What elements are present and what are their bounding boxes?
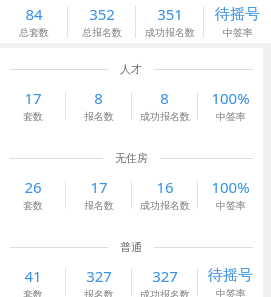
staticText: 普通 xyxy=(120,240,142,254)
staticText: 报名数 xyxy=(84,110,114,123)
staticText: 待摇号 xyxy=(208,266,253,285)
staticText: 中签率 xyxy=(216,199,246,212)
staticText: 中签率 xyxy=(216,287,246,297)
staticText: 26 xyxy=(24,177,42,197)
button[interactable]: 8 xyxy=(66,88,131,123)
button[interactable]: 100% xyxy=(198,88,263,123)
button[interactable]: 100% xyxy=(198,177,263,212)
button[interactable]: 待摇号 xyxy=(198,266,263,297)
button[interactable]: 8 xyxy=(132,88,197,123)
staticText: 成功报名数 xyxy=(145,26,195,39)
staticText: 成功报名数 xyxy=(140,199,190,212)
staticText: 100% xyxy=(211,177,250,197)
staticText: 成功报名数 xyxy=(140,110,190,123)
staticText: 84 xyxy=(25,4,43,24)
button[interactable]: 84 xyxy=(0,4,67,39)
staticText: 套数 xyxy=(23,110,43,123)
staticText: 8 xyxy=(160,88,169,108)
staticText: 无住房 xyxy=(115,151,148,165)
staticText: 100% xyxy=(211,88,250,108)
staticText: 352 xyxy=(89,4,115,24)
button[interactable]: 16 xyxy=(132,177,197,212)
staticText: 中签率 xyxy=(223,26,253,39)
staticText: 327 xyxy=(86,266,112,286)
button[interactable]: 327 xyxy=(132,266,197,297)
button[interactable]: 26 xyxy=(0,177,65,212)
staticText: 中签率 xyxy=(216,110,246,123)
staticText: 327 xyxy=(152,266,178,286)
staticText: 报名数 xyxy=(84,199,114,212)
staticText: 总报名数 xyxy=(82,26,122,39)
staticText: 套数 xyxy=(23,288,43,297)
staticText: 41 xyxy=(24,266,42,286)
staticText: 待摇号 xyxy=(215,5,260,24)
staticText: 351 xyxy=(157,4,183,24)
button[interactable]: 327 xyxy=(66,266,131,297)
staticText: 17 xyxy=(24,88,42,108)
button[interactable]: 17 xyxy=(0,88,65,123)
button[interactable]: 待摇号 xyxy=(204,5,271,39)
button[interactable]: 17 xyxy=(66,177,131,212)
button[interactable]: 352 xyxy=(68,4,135,39)
staticText: 16 xyxy=(156,177,174,197)
staticText: 套数 xyxy=(23,199,43,212)
button[interactable]: 351 xyxy=(136,4,203,39)
staticText: 报名数 xyxy=(84,288,114,297)
staticText: 总套数 xyxy=(19,26,49,39)
staticText: 17 xyxy=(90,177,108,197)
staticText: 人才 xyxy=(120,62,142,76)
button[interactable]: 41 xyxy=(0,266,65,297)
staticText: 8 xyxy=(94,88,103,108)
staticText: 成功报名数 xyxy=(140,288,190,297)
